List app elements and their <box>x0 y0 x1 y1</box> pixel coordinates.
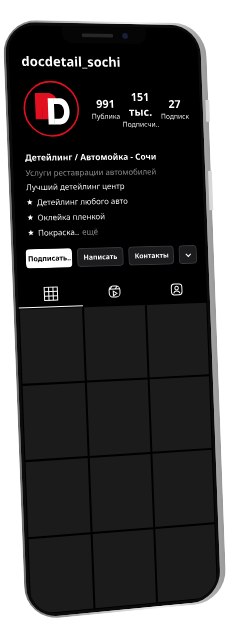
button[interactable]: Reels tab <box>82 277 146 305</box>
button[interactable]: Profile picture <box>22 80 80 137</box>
staticText: Написать <box>83 252 118 263</box>
button[interactable]: Post <box>152 450 214 527</box>
staticText: 991 <box>96 96 115 111</box>
button[interactable]: Post <box>93 529 156 608</box>
staticText: 27 <box>168 96 181 111</box>
staticText: Лучший детейлинг центр <box>26 180 125 192</box>
staticText: Покраска.. <box>38 226 79 238</box>
button[interactable]: Контакты <box>128 245 174 266</box>
button[interactable]: Post <box>155 524 217 602</box>
button[interactable]: Post <box>90 454 153 532</box>
staticText: Детейлинг любого авто <box>37 195 128 207</box>
button[interactable]: ещё <box>82 225 98 237</box>
button[interactable]: Написать <box>77 247 124 267</box>
staticText: 151 тыс. <box>121 89 159 119</box>
staticText: Контакты <box>134 251 169 261</box>
button[interactable]: Post <box>20 307 85 384</box>
button[interactable]: 27 <box>158 94 191 124</box>
button[interactable]: Post <box>84 305 148 381</box>
button[interactable]: Post <box>150 376 212 452</box>
button[interactable]: Подписать.. <box>25 248 72 269</box>
button[interactable]: 151 тыс. <box>121 87 160 132</box>
staticText: Оклейка пленкой <box>37 210 105 222</box>
button[interactable]: Post <box>147 303 209 377</box>
button[interactable]: Grid tab <box>17 279 83 308</box>
staticText: Публикац.. <box>89 112 122 122</box>
button[interactable]: More options <box>178 245 197 264</box>
button[interactable]: Post <box>87 379 150 456</box>
button[interactable]: Post <box>28 534 93 614</box>
button[interactable]: Tagged tab <box>145 275 207 303</box>
button[interactable]: 991 <box>89 94 122 124</box>
staticText: Детейлинг / Автомойка - Сочи <box>25 151 157 164</box>
staticText: Подписать.. <box>28 253 71 264</box>
button[interactable]: Post <box>23 383 88 460</box>
button[interactable]: Post <box>25 458 91 537</box>
staticText: docdetail_sochi <box>21 52 121 71</box>
button[interactable]: docdetail_sochi <box>9 47 199 77</box>
staticText: Услуги реставрации автомобилей <box>25 165 157 178</box>
staticText: Подписки <box>159 112 191 122</box>
staticText: Подписчи.. <box>122 120 160 130</box>
